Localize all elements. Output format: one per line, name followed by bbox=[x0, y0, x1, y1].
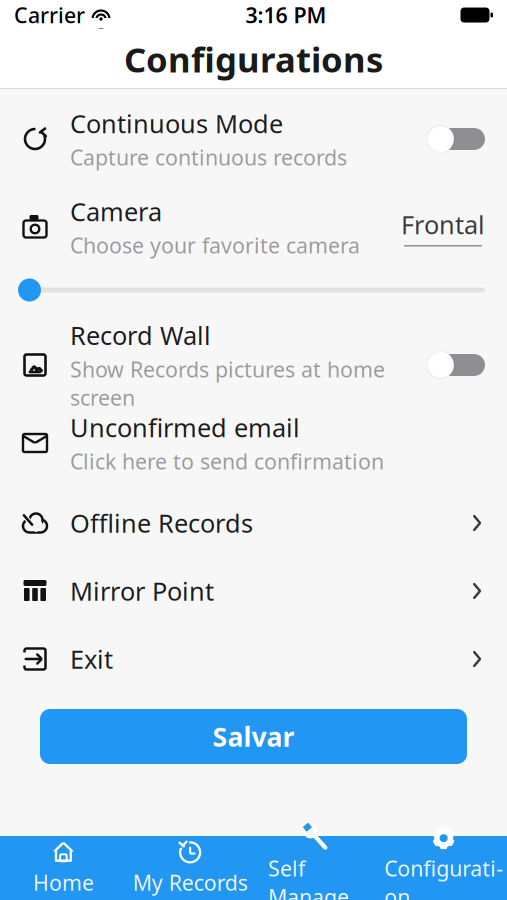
button[interactable]: Offline Records bbox=[0, 497, 507, 549]
button[interactable]: Salvar bbox=[40, 709, 467, 764]
staticText: Choose your favorite camera bbox=[70, 231, 360, 259]
staticText: Show Records pictures at home screen bbox=[70, 355, 385, 412]
button[interactable]: Self Manage… bbox=[253, 836, 380, 900]
button[interactable]: Camera bbox=[0, 195, 507, 259]
staticText: Mirror Point bbox=[70, 574, 214, 608]
button[interactable]: Mirror Point bbox=[0, 565, 507, 617]
staticText: Click here to send confirmation bbox=[70, 447, 384, 475]
staticText: Frontal bbox=[401, 207, 485, 241]
staticText: Carrier bbox=[14, 1, 85, 29]
button[interactable]: Home bbox=[0, 836, 127, 900]
staticText: My Records bbox=[133, 868, 248, 897]
staticText: Unconfirmed email bbox=[70, 410, 300, 444]
staticText: Configurations bbox=[124, 36, 383, 82]
staticText: Home bbox=[33, 868, 94, 897]
staticText: Offline Records bbox=[70, 506, 253, 540]
staticText: Continuous Mode bbox=[70, 106, 283, 140]
button[interactable]: Record Wall bbox=[0, 325, 507, 405]
staticText: Camera bbox=[70, 194, 162, 228]
staticText: Record Wall bbox=[70, 318, 211, 352]
staticText: 3:16 PM bbox=[245, 1, 326, 29]
button[interactable]: Continuous Mode bbox=[0, 107, 507, 171]
button[interactable]: My Records bbox=[127, 836, 254, 900]
button[interactable]: Exit bbox=[0, 633, 507, 685]
button[interactable]: Configuration bbox=[380, 836, 507, 900]
staticText: Exit bbox=[70, 642, 113, 676]
staticText: Configuration bbox=[384, 854, 503, 900]
staticText: Salvar bbox=[212, 719, 294, 754]
staticText: Self Manage… bbox=[268, 854, 366, 900]
button[interactable]: Unconfirmed email bbox=[0, 411, 507, 475]
staticText: Capture continuous records bbox=[70, 143, 347, 171]
